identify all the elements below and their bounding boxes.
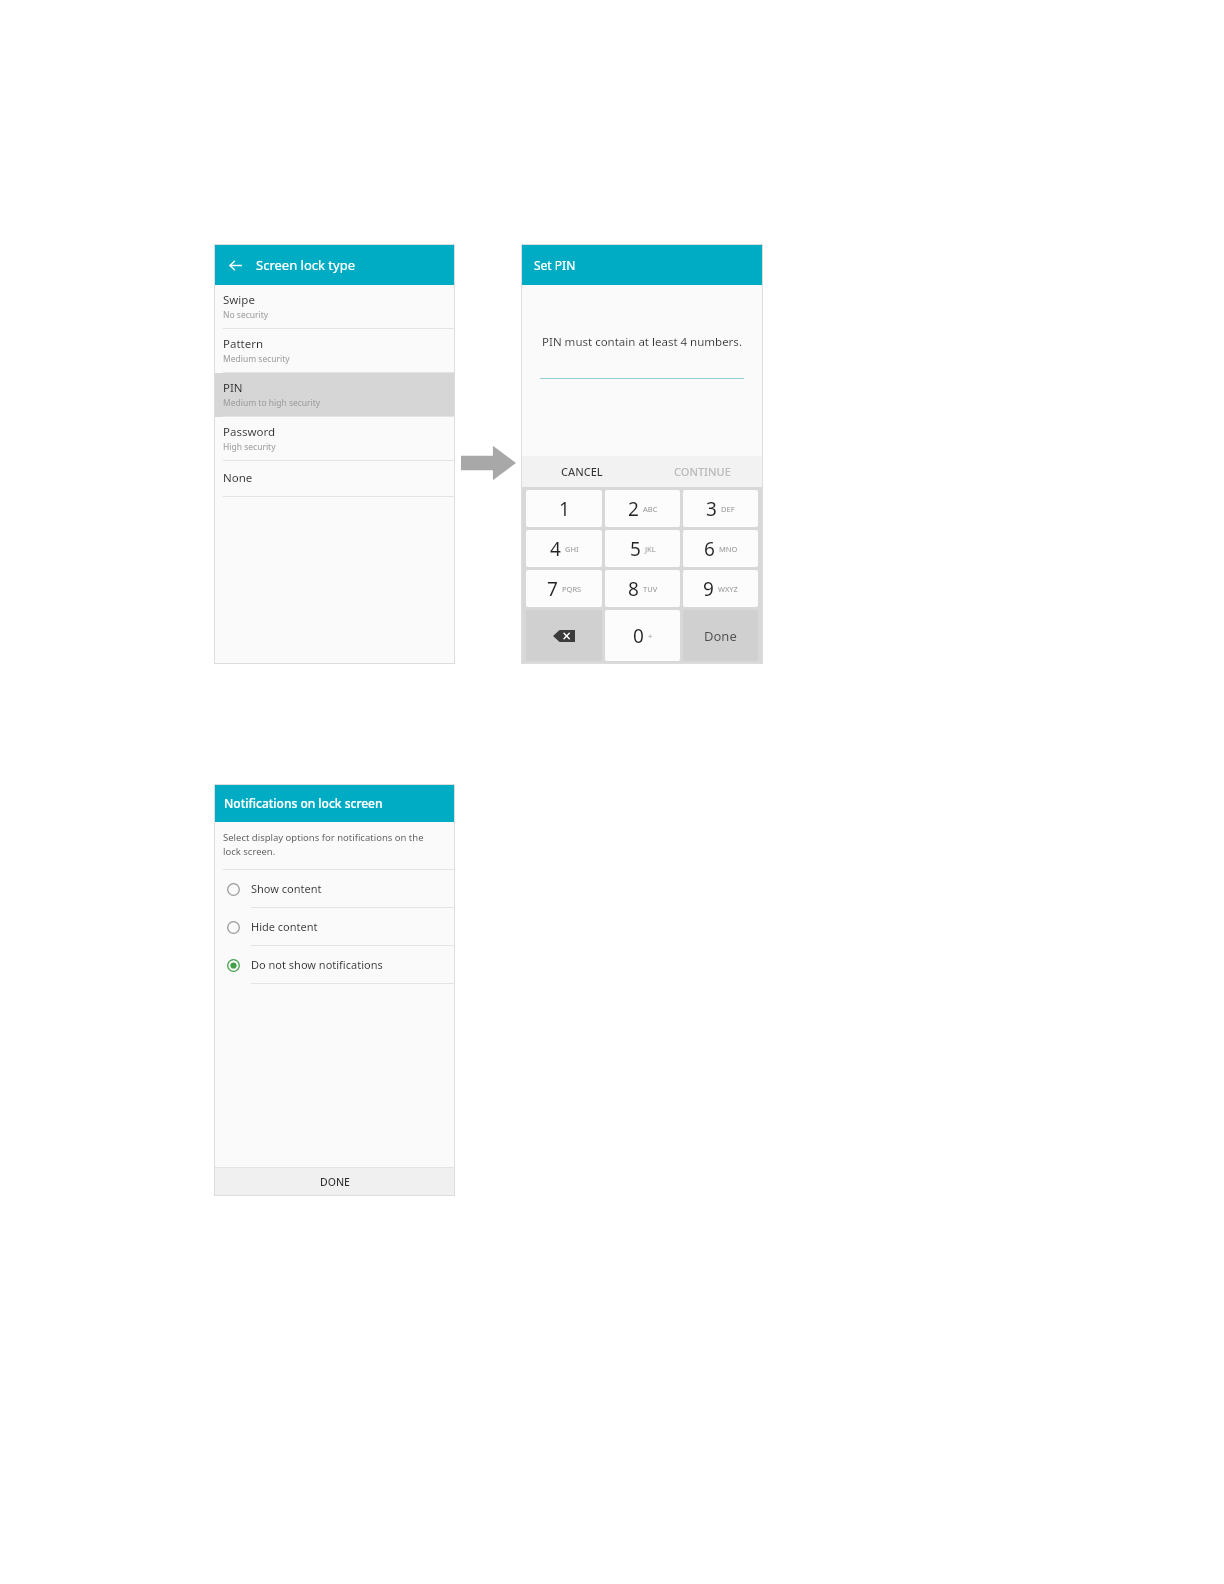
button[interactable]: DONE	[214, 1168, 455, 1196]
staticText: Show content	[251, 881, 322, 896]
button[interactable]: 5	[605, 530, 680, 567]
button[interactable]: Back	[214, 244, 455, 285]
button[interactable]: 8	[605, 570, 680, 607]
staticText: Done	[704, 627, 737, 645]
staticText: +	[648, 631, 653, 641]
button[interactable]: Swipe	[214, 285, 455, 329]
staticText: PIN	[223, 380, 243, 396]
staticText: PQRS	[562, 584, 582, 594]
staticText: TUV	[643, 584, 658, 594]
button[interactable]: Show content	[214, 870, 455, 908]
staticText: Password	[223, 424, 276, 440]
staticText: PIN must contain at least 4 numbers.	[521, 334, 763, 350]
staticText: Screen lock type	[256, 256, 355, 274]
staticText: CONTINUE	[674, 464, 731, 479]
button[interactable]: Hide content	[214, 908, 455, 946]
staticText: 5	[630, 536, 641, 562]
staticText: 3	[706, 496, 717, 522]
staticText: ABC	[643, 504, 658, 514]
button[interactable]: CANCEL	[521, 456, 642, 487]
staticText: Medium to high security	[223, 397, 321, 409]
staticText: DEF	[721, 504, 735, 514]
button[interactable]: 6	[683, 530, 758, 567]
button[interactable]: None	[214, 461, 455, 497]
staticText: Select display options for notifications…	[223, 831, 424, 858]
staticText: Notifications on lock screen	[224, 795, 383, 811]
staticText: GHI	[565, 544, 579, 554]
button[interactable]: 1	[526, 490, 602, 527]
staticText: Swipe	[223, 292, 255, 308]
staticText: No security	[223, 309, 269, 321]
staticText: 4	[550, 536, 561, 562]
button[interactable]: 7	[526, 570, 602, 607]
staticText: 0	[633, 623, 644, 649]
staticText: 7	[547, 576, 558, 602]
button[interactable]: Pattern	[214, 329, 455, 373]
staticText: Set PIN	[534, 257, 576, 273]
button[interactable]: PIN	[214, 373, 455, 417]
staticText: Medium security	[223, 353, 290, 365]
staticText: High security	[223, 441, 276, 453]
staticText: Pattern	[223, 336, 264, 352]
button[interactable]: Do not show notifications	[214, 946, 455, 984]
staticText: Do not show notifications	[251, 957, 383, 972]
button[interactable]: Password	[214, 417, 455, 461]
button[interactable]: 3	[683, 490, 758, 527]
staticText: MNO	[719, 544, 738, 554]
button[interactable]: 2	[605, 490, 680, 527]
button[interactable]: Done	[683, 610, 758, 661]
staticText: 8	[628, 576, 639, 602]
staticText: 9	[703, 576, 714, 602]
button[interactable]: Back	[224, 254, 246, 276]
staticText: None	[223, 470, 253, 486]
button[interactable]: 0	[605, 610, 680, 661]
staticText: JKL	[645, 544, 656, 554]
staticText: 2	[628, 496, 639, 522]
button[interactable]: 4	[526, 530, 602, 567]
button[interactable]: 9	[683, 570, 758, 607]
staticText: CANCEL	[561, 464, 603, 479]
staticText: DONE	[320, 1175, 350, 1189]
button[interactable]: Notifications on lock screen	[214, 784, 455, 822]
button[interactable]: CONTINUE	[642, 456, 763, 487]
button[interactable]: Backspace	[526, 610, 602, 661]
staticText: 1	[559, 496, 570, 522]
staticText: 6	[704, 536, 715, 562]
staticText: WXYZ	[718, 584, 738, 594]
staticText: Hide content	[251, 919, 318, 934]
button[interactable]: Set PIN	[521, 244, 763, 285]
